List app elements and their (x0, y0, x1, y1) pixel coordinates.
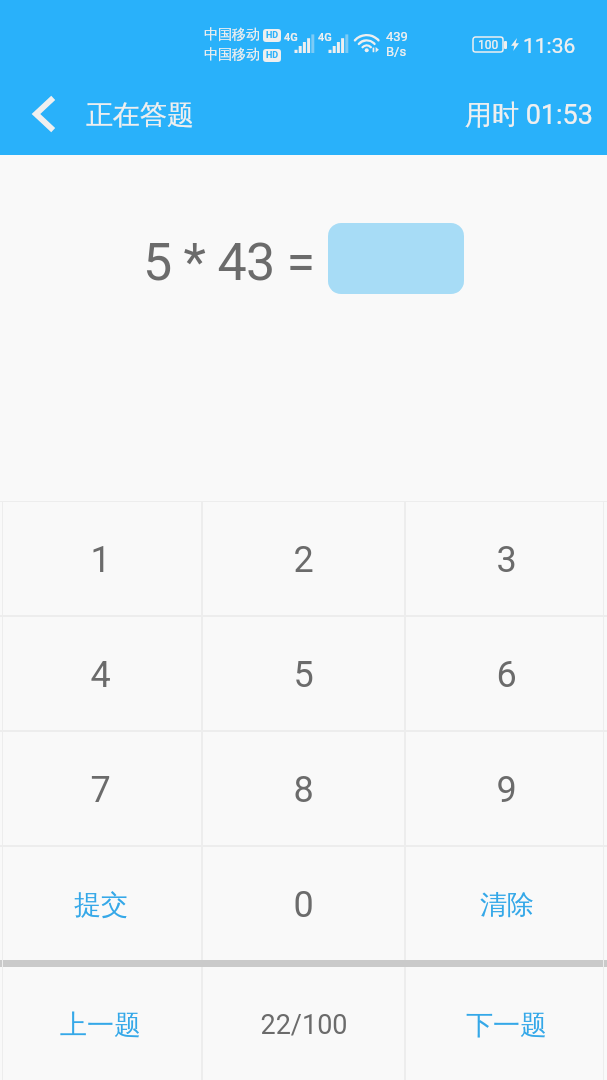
button[interactable]: 下一题 (406, 967, 607, 1080)
staticText: 中国移动 (204, 26, 260, 44)
staticText: 2 (293, 539, 314, 581)
staticText: 下一题 (466, 1008, 547, 1042)
button[interactable]: 8 (203, 732, 404, 845)
staticText: B/s (386, 44, 407, 59)
button[interactable]: 5 (203, 617, 404, 730)
button[interactable]: 0 (203, 847, 404, 960)
button[interactable]: 清除 (406, 847, 607, 960)
button[interactable]: 上一题 (0, 967, 201, 1080)
button[interactable]: 7 (0, 732, 201, 845)
button[interactable]: 6 (406, 617, 607, 730)
staticText: 100 (478, 38, 499, 52)
button[interactable]: 提交 (0, 847, 201, 960)
staticText: 11:36 (523, 34, 576, 59)
staticText: 9 (496, 769, 517, 811)
staticText: 8 (293, 769, 314, 811)
staticText: 439 (386, 29, 408, 44)
staticText: 7 (90, 769, 111, 811)
button[interactable]: 2 (203, 502, 404, 615)
button[interactable]: 22/100 (203, 967, 404, 1080)
staticText: 正在答题 (86, 98, 194, 132)
button[interactable]: 3 (406, 502, 607, 615)
button[interactable]: 1 (0, 502, 201, 615)
staticText: 用时 01:53 (465, 98, 593, 132)
button[interactable] (328, 223, 464, 294)
staticText: 1 (90, 539, 111, 581)
staticText: HD (266, 50, 279, 61)
button[interactable]: Back (10, 75, 76, 152)
staticText: 3 (496, 539, 517, 581)
button[interactable]: 9 (406, 732, 607, 845)
button[interactable]: 4 (0, 617, 201, 730)
staticText: 清除 (480, 888, 534, 922)
staticText: HD (266, 30, 279, 41)
staticText: 4G (284, 31, 298, 44)
staticText: 上一题 (60, 1008, 141, 1042)
staticText: 4 (90, 654, 111, 696)
staticText: 5 (293, 654, 314, 696)
staticText: 6 (496, 654, 517, 696)
staticText: 5 * 43 = (143, 232, 315, 293)
staticText: 22/100 (260, 1009, 348, 1041)
staticText: 中国移动 (204, 46, 260, 64)
staticText: 提交 (74, 888, 128, 922)
staticText: 0 (293, 884, 314, 926)
staticText: 4G (318, 31, 332, 44)
